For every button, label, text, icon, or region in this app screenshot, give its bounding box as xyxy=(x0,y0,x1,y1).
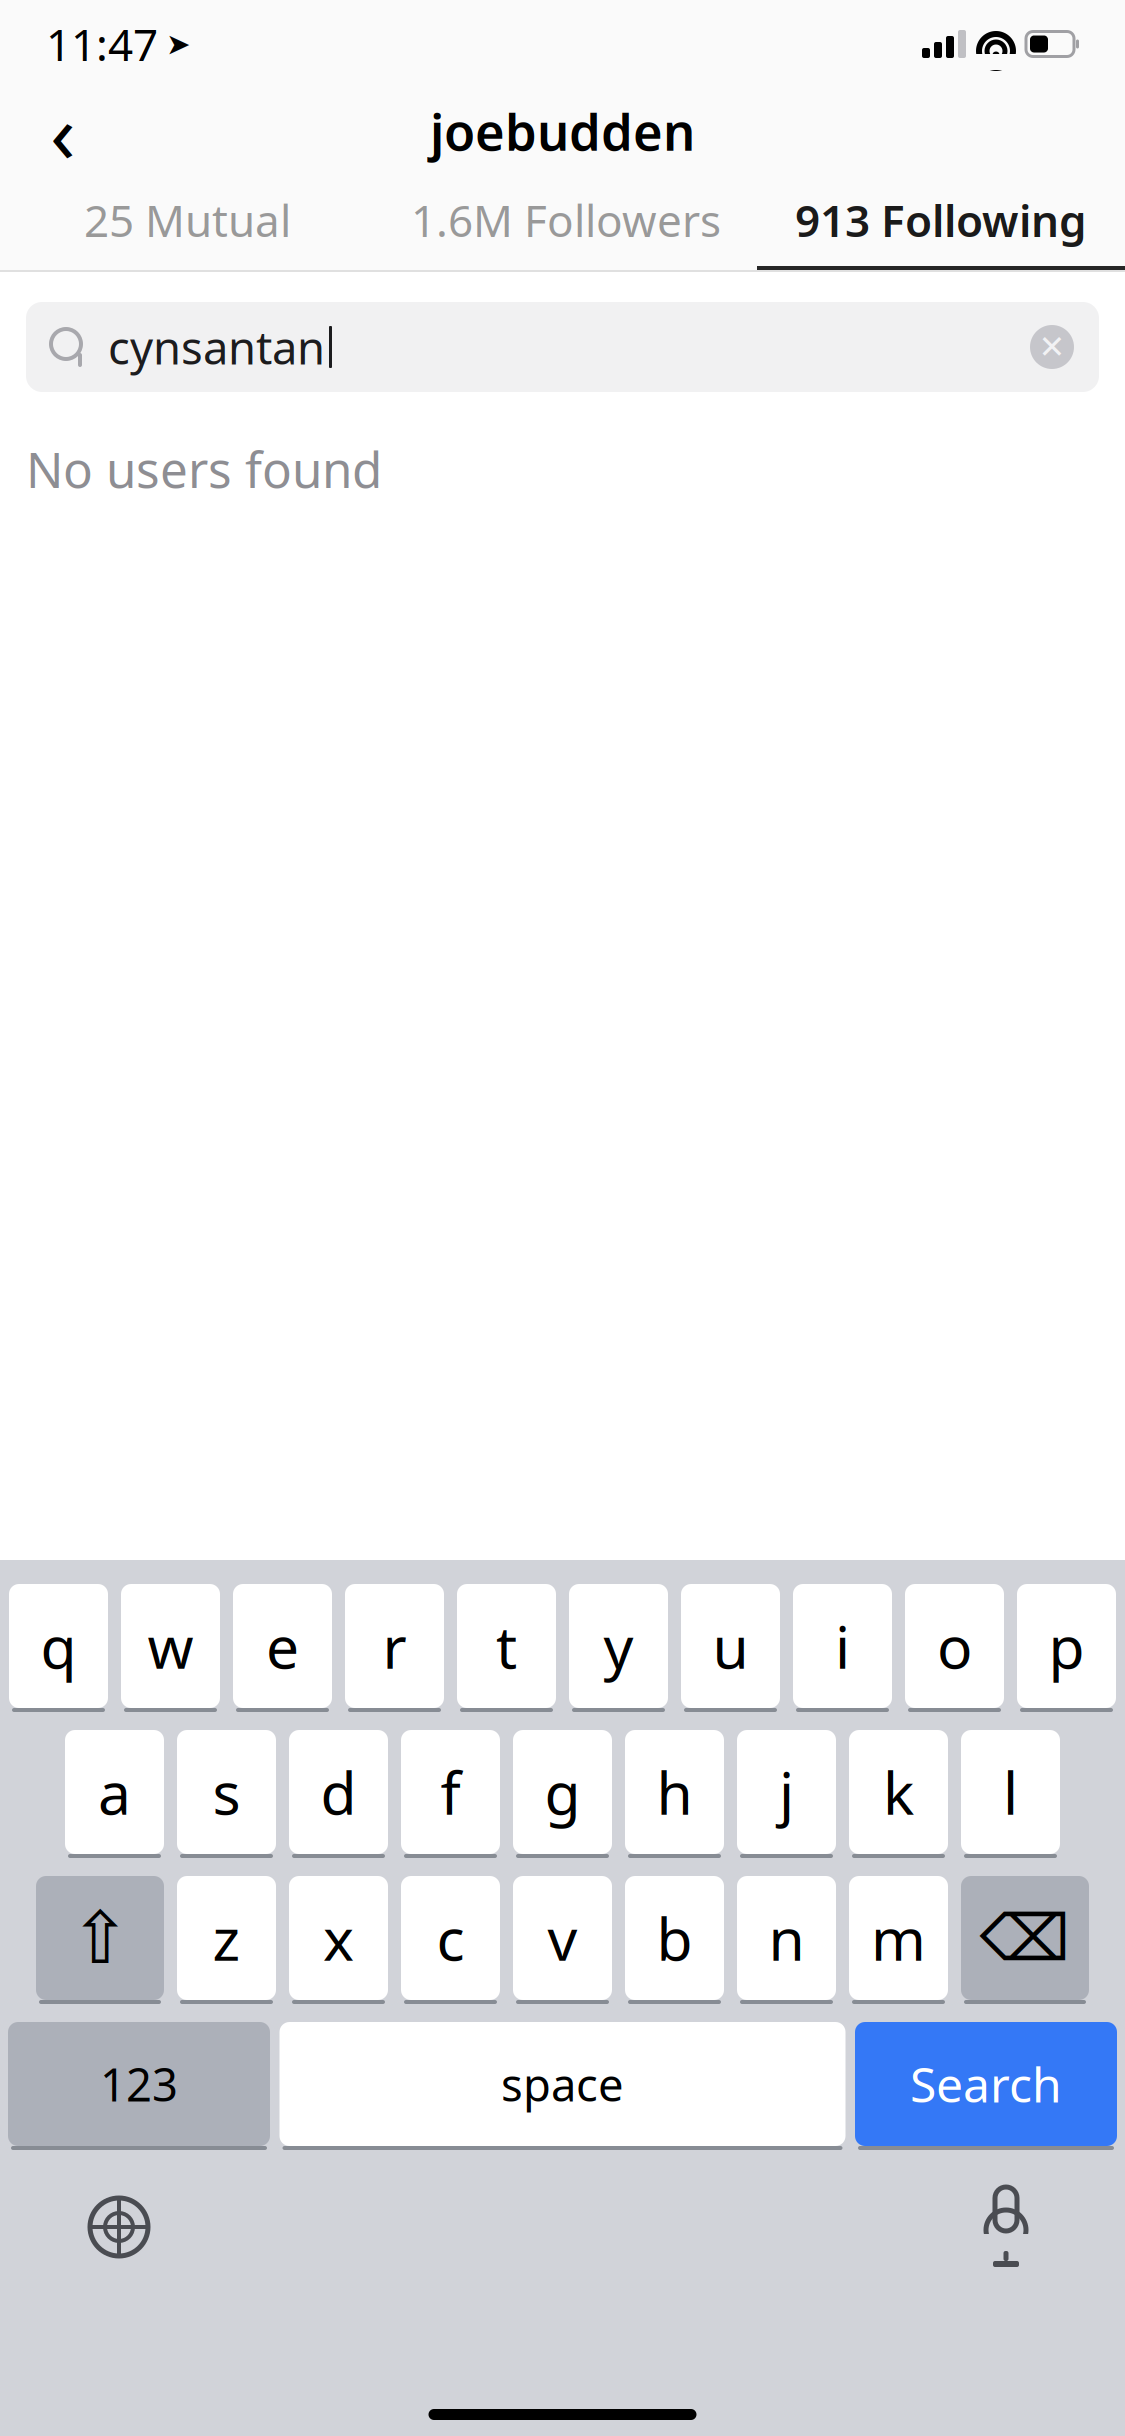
button[interactable]: k xyxy=(849,1730,948,1858)
staticText: space xyxy=(501,2054,624,2114)
staticText: ✕ xyxy=(1038,329,1065,365)
staticText: u xyxy=(712,1607,748,1685)
staticText: f xyxy=(440,1753,460,1831)
staticText: b xyxy=(656,1899,692,1977)
staticText: d xyxy=(320,1753,356,1831)
button[interactable]: 913 Following xyxy=(757,174,1125,270)
button[interactable]: f xyxy=(401,1730,500,1858)
staticText: joebudden xyxy=(430,97,695,165)
button[interactable]: 25 Mutual xyxy=(0,174,375,270)
staticText: t xyxy=(496,1607,517,1685)
staticText: 1.6M Followers xyxy=(411,191,721,249)
staticText: j xyxy=(779,1753,794,1831)
button[interactable]: e xyxy=(233,1584,332,1712)
button[interactable]: z xyxy=(177,1876,276,2004)
staticText: ➤ xyxy=(166,27,191,61)
staticText: m xyxy=(871,1899,926,1977)
button[interactable]: 123 xyxy=(8,2022,270,2150)
staticText: g xyxy=(544,1753,580,1831)
staticText: i xyxy=(835,1607,850,1685)
staticText: Search xyxy=(910,2052,1062,2116)
staticText: 25 Mutual xyxy=(84,191,291,249)
staticText: 11:47 xyxy=(46,15,158,73)
button[interactable]: p xyxy=(1017,1584,1116,1712)
button[interactable]: s xyxy=(177,1730,276,1858)
button[interactable]: Delete xyxy=(961,1876,1089,2004)
staticText: cynsantan xyxy=(108,317,325,377)
staticText: e xyxy=(266,1607,299,1685)
staticText: 123 xyxy=(100,2054,178,2114)
button[interactable]: Back xyxy=(18,89,108,173)
staticText: q xyxy=(40,1607,76,1685)
button[interactable]: b xyxy=(625,1876,724,2004)
button[interactable]: space xyxy=(279,2022,845,2150)
button[interactable]: g xyxy=(513,1730,612,1858)
button[interactable]: n xyxy=(737,1876,836,2004)
staticText: v xyxy=(547,1899,577,1977)
button[interactable]: d xyxy=(289,1730,388,1858)
button[interactable]: m xyxy=(849,1876,948,2004)
button[interactable]: v xyxy=(513,1876,612,2004)
button[interactable]: Clear search text xyxy=(1019,314,1085,380)
button[interactable]: i xyxy=(793,1584,892,1712)
staticText: x xyxy=(323,1899,354,1977)
button[interactable]: q xyxy=(9,1584,108,1712)
button[interactable]: Search xyxy=(855,2022,1117,2150)
button[interactable]: a xyxy=(65,1730,164,1858)
button[interactable]: o xyxy=(905,1584,1004,1712)
button[interactable]: u xyxy=(681,1584,780,1712)
staticText: o xyxy=(937,1607,972,1685)
button[interactable]: c xyxy=(401,1876,500,2004)
staticText: n xyxy=(768,1899,804,1977)
staticText: a xyxy=(98,1753,131,1831)
staticText: l xyxy=(1003,1753,1018,1831)
staticText: w xyxy=(147,1607,193,1685)
button[interactable]: x xyxy=(289,1876,388,2004)
staticText: y xyxy=(603,1607,633,1685)
button[interactable]: y xyxy=(569,1584,668,1712)
button[interactable]: l xyxy=(961,1730,1060,1858)
button[interactable]: h xyxy=(625,1730,724,1858)
button[interactable]: t xyxy=(457,1584,556,1712)
button[interactable]: Switch keyboard xyxy=(86,2194,152,2260)
staticText: 913 Following xyxy=(795,191,1087,249)
staticText: No users found xyxy=(26,436,382,501)
button[interactable]: 1.6M Followers xyxy=(375,174,757,270)
staticText: h xyxy=(656,1753,692,1831)
staticText: p xyxy=(1048,1607,1084,1685)
button[interactable]: Shift xyxy=(36,1876,164,2004)
staticText: z xyxy=(212,1899,240,1977)
staticText: c xyxy=(436,1899,464,1977)
button[interactable]: w xyxy=(121,1584,220,1712)
staticText: k xyxy=(883,1753,914,1831)
staticText: ⇧ xyxy=(70,1897,130,1979)
button[interactable]: Dictate xyxy=(973,2182,1039,2272)
staticText: ⌫ xyxy=(979,1902,1070,1974)
button[interactable]: r xyxy=(345,1584,444,1712)
staticText: s xyxy=(212,1753,240,1831)
button[interactable]: j xyxy=(737,1730,836,1858)
staticText: ‹ xyxy=(50,76,76,186)
staticText: r xyxy=(382,1607,406,1685)
